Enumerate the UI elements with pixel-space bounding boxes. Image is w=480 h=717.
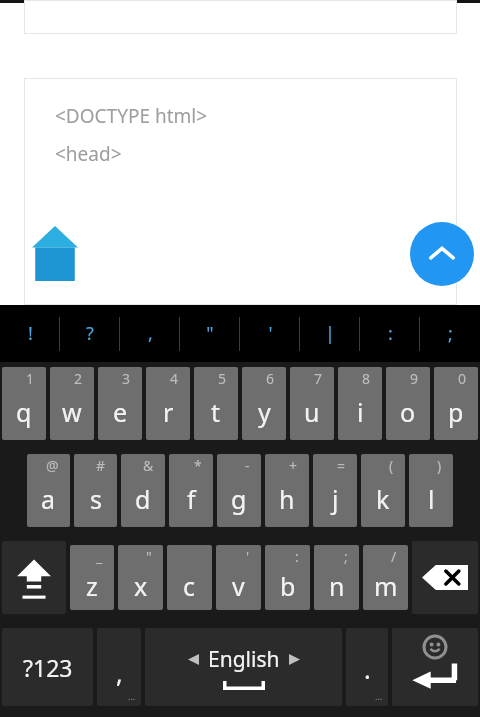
staticText: q xyxy=(16,395,32,429)
staticText: d xyxy=(135,482,151,516)
staticText: : xyxy=(388,321,393,346)
staticText: 3 xyxy=(122,369,131,388)
button[interactable]: | xyxy=(300,305,360,362)
button[interactable]: = xyxy=(313,454,357,527)
button[interactable]: " xyxy=(180,305,240,362)
staticText: k xyxy=(376,482,390,516)
button[interactable]: 3 xyxy=(98,367,142,440)
staticText: ?123 xyxy=(23,652,73,683)
staticText: . xyxy=(364,652,371,686)
button[interactable]: / xyxy=(363,545,408,610)
staticText: i xyxy=(357,395,364,429)
button[interactable]: : xyxy=(265,545,310,610)
staticText: * xyxy=(194,456,202,475)
button[interactable]: ' xyxy=(216,545,261,610)
button[interactable]: _ xyxy=(70,545,114,610)
staticText: | xyxy=(325,321,335,346)
staticText: + xyxy=(289,456,298,475)
button[interactable]: , xyxy=(120,305,180,362)
button[interactable]: @ xyxy=(27,454,70,527)
button[interactable]: Shift xyxy=(2,541,66,614)
button[interactable]: 6 xyxy=(242,367,286,440)
staticText: g xyxy=(231,482,247,516)
staticText: # xyxy=(96,456,106,475)
staticText: j xyxy=(332,482,339,516)
staticText: 4 xyxy=(170,369,179,388)
staticText: : xyxy=(295,547,299,566)
staticText: n xyxy=(329,569,345,603)
button[interactable]: * xyxy=(169,454,213,527)
staticText: ! xyxy=(28,321,33,346)
staticText: - xyxy=(245,456,250,475)
staticText: " xyxy=(206,321,214,346)
staticText: _ xyxy=(96,547,103,566)
button[interactable]: " xyxy=(118,545,163,610)
staticText: a xyxy=(41,482,56,516)
button[interactable]: Comma xyxy=(97,628,141,706)
staticText: <DOCTYPE html> xyxy=(55,103,208,129)
staticText: , xyxy=(116,656,123,690)
button[interactable]: ! xyxy=(0,305,60,362)
staticText: h xyxy=(279,482,295,516)
staticText: o xyxy=(400,395,416,429)
staticText: = xyxy=(337,456,346,475)
button[interactable]: c xyxy=(167,545,212,610)
staticText: r xyxy=(163,395,174,429)
button[interactable]: Period xyxy=(346,628,388,706)
button[interactable]: 0 xyxy=(434,367,478,440)
staticText: 8 xyxy=(362,369,371,388)
staticText: ? xyxy=(86,321,94,346)
staticText: v xyxy=(232,569,245,603)
staticText: <head> xyxy=(55,141,122,167)
staticText: @ xyxy=(46,456,59,475)
staticText: ) xyxy=(437,456,442,475)
button[interactable]: + xyxy=(265,454,309,527)
button[interactable]: 8 xyxy=(338,367,382,440)
staticText: , xyxy=(148,321,153,346)
staticText: 5 xyxy=(218,369,227,388)
button[interactable]: ?123 xyxy=(2,628,93,706)
button[interactable]: 7 xyxy=(290,367,334,440)
staticText: English xyxy=(208,645,280,674)
button[interactable]: # xyxy=(74,454,117,527)
staticText: m xyxy=(374,569,398,603)
staticText: w xyxy=(62,395,82,429)
staticText: f xyxy=(187,482,196,516)
staticText: ' xyxy=(268,321,273,346)
button[interactable]: Backspace xyxy=(412,541,478,614)
button[interactable]: ? xyxy=(60,305,120,362)
button[interactable]: 5 xyxy=(194,367,238,440)
button[interactable]: 4 xyxy=(146,367,190,440)
staticText: 9 xyxy=(410,369,419,388)
button[interactable]: 9 xyxy=(386,367,430,440)
staticText: 1 xyxy=(26,369,35,388)
button[interactable]: ; xyxy=(314,545,359,610)
staticText: e xyxy=(113,395,128,429)
button[interactable]: : xyxy=(360,305,420,362)
staticText: 0 xyxy=(458,369,467,388)
button[interactable]: 2 xyxy=(50,367,94,440)
staticText: / xyxy=(391,547,397,566)
staticText: u xyxy=(304,395,320,429)
button[interactable]: Enter xyxy=(392,628,478,706)
staticText: & xyxy=(143,456,154,475)
staticText: t xyxy=(211,395,221,429)
staticText: 2 xyxy=(74,369,83,388)
staticText: ; xyxy=(344,547,348,566)
button[interactable]: ; xyxy=(420,305,480,362)
staticText: ; xyxy=(448,321,453,346)
button[interactable]: ) xyxy=(409,454,453,527)
button[interactable]: ' xyxy=(240,305,300,362)
staticText: 6 xyxy=(266,369,275,388)
button[interactable]: Scroll to top xyxy=(410,222,474,286)
button[interactable]: - xyxy=(217,454,261,527)
button[interactable]: Home xyxy=(32,225,78,281)
staticText: ... xyxy=(128,690,136,702)
staticText: ( xyxy=(389,456,394,475)
button[interactable]: ( xyxy=(361,454,405,527)
button[interactable]: 1 xyxy=(2,367,46,440)
staticText: s xyxy=(90,482,102,516)
staticText: y xyxy=(258,395,271,429)
button[interactable]: & xyxy=(121,454,165,527)
button[interactable]: Space xyxy=(145,628,342,706)
